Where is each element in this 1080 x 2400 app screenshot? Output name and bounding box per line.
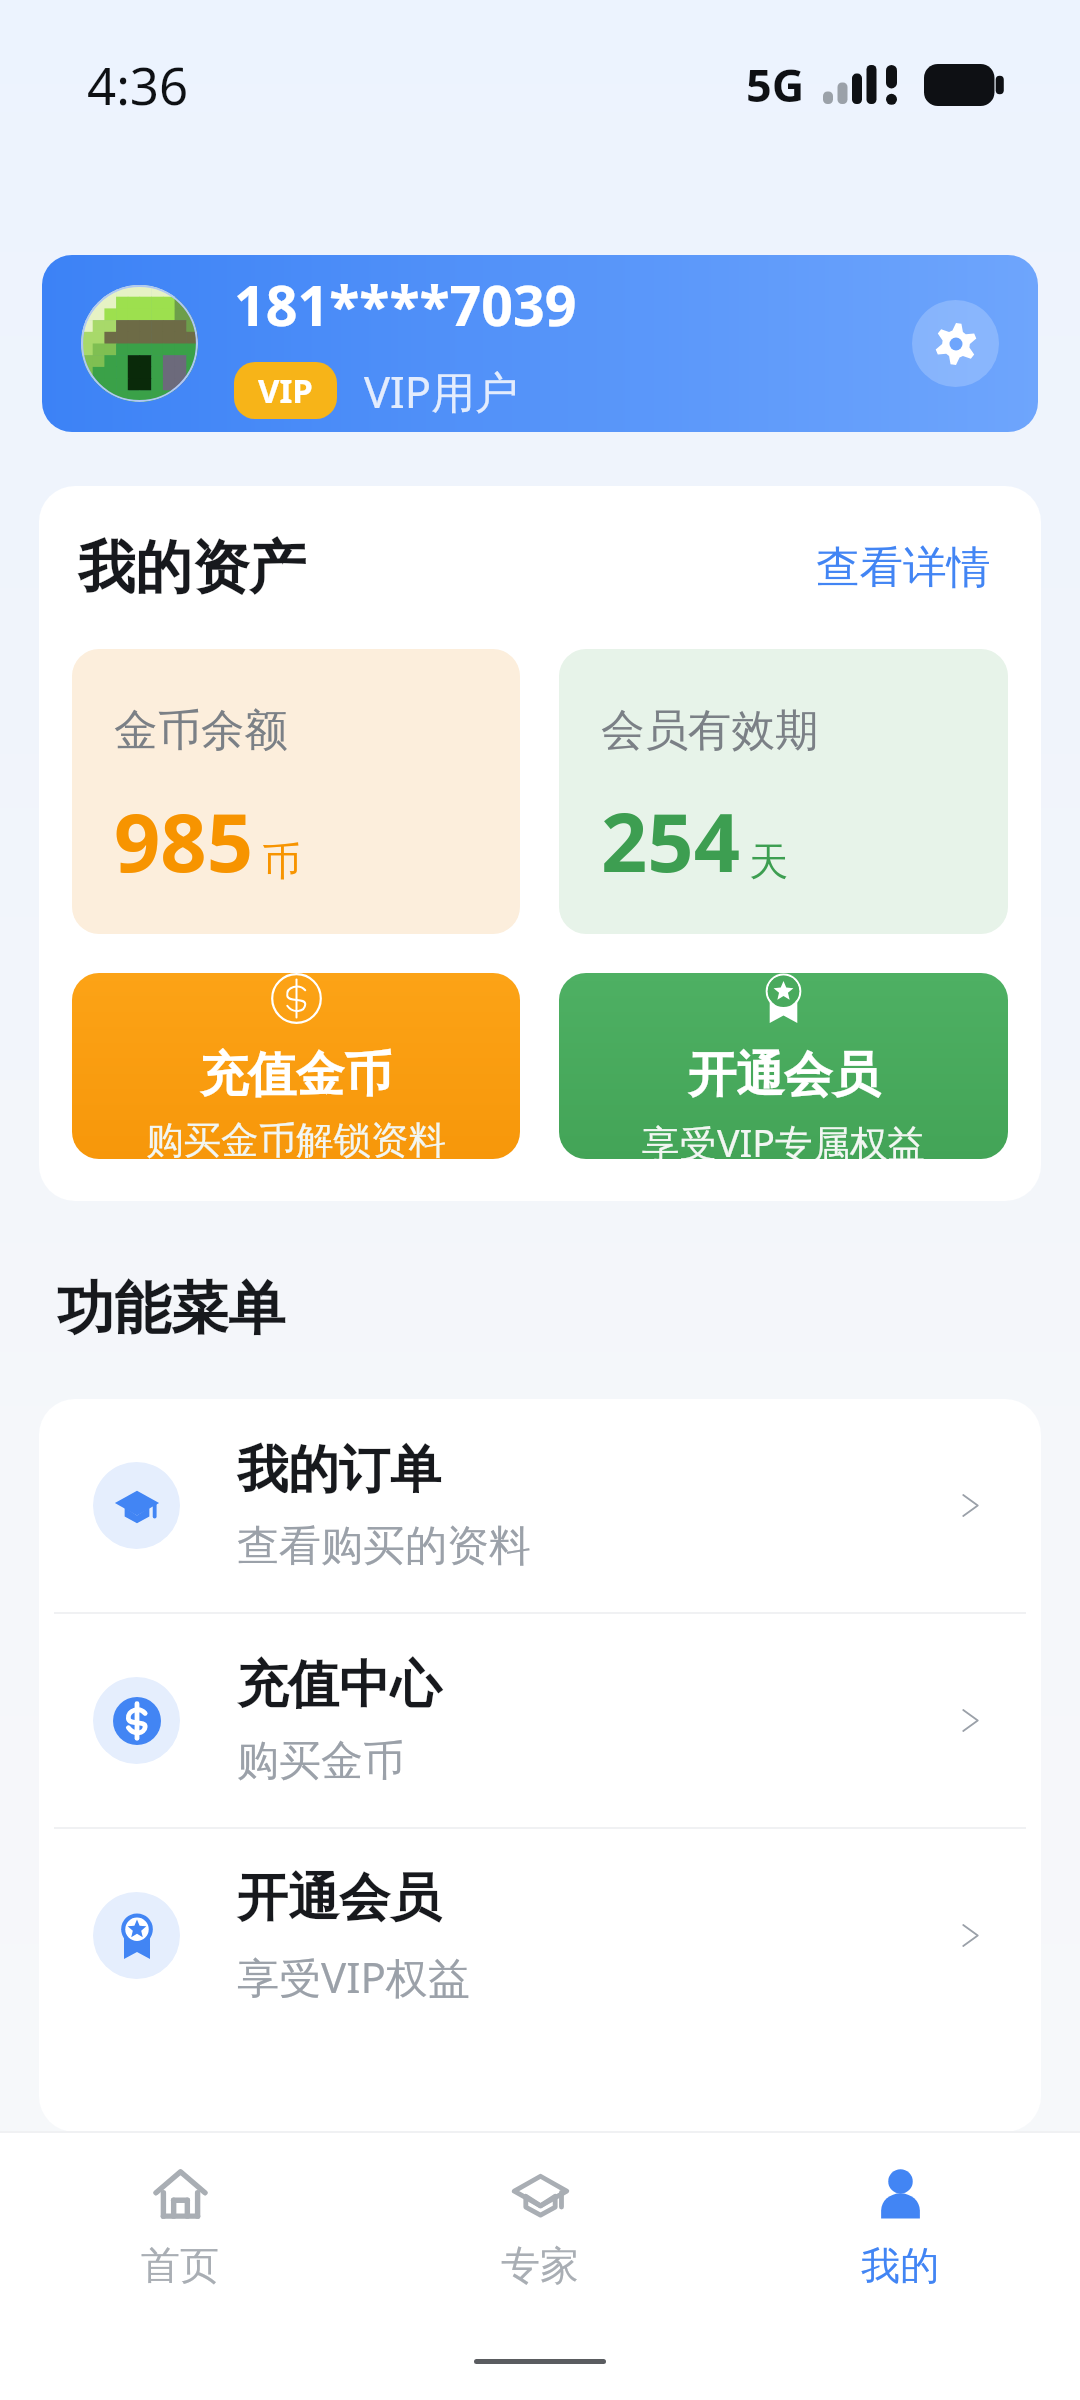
- staticText: 购买金币解锁资料: [146, 1117, 446, 1159]
- button[interactable]: 开通会员: [39, 1829, 1041, 2042]
- staticText: 会员有效期: [601, 703, 819, 758]
- staticText: 金币余额: [114, 703, 288, 758]
- staticText: VIP: [258, 368, 313, 413]
- staticText: 4:36: [87, 50, 189, 119]
- button[interactable]: 首页: [0, 2133, 360, 2322]
- staticText: 充值中心: [237, 1653, 441, 1717]
- staticText: 开通会员: [237, 1866, 441, 1930]
- staticText: 5G: [746, 54, 805, 115]
- staticText: 985: [114, 785, 253, 895]
- button[interactable]: 充值金币: [72, 973, 520, 1159]
- button[interactable]: 开通会员: [559, 973, 1008, 1159]
- staticText: VIP用户: [364, 361, 519, 420]
- staticText: 专家: [501, 2241, 579, 2290]
- staticText: 254: [601, 785, 740, 895]
- staticText: 享受VIP专属权益: [642, 1117, 925, 1159]
- staticText: 功能菜单: [57, 1273, 285, 1345]
- staticText: 我的订单: [237, 1438, 441, 1502]
- staticText: 181****7039: [234, 267, 577, 343]
- staticText: 开通会员: [688, 1045, 880, 1105]
- staticText: 首页: [141, 2241, 219, 2290]
- button[interactable]: 181****7039: [42, 255, 1038, 432]
- staticText: 天: [749, 837, 788, 886]
- button[interactable]: 充值中心: [39, 1614, 1041, 1827]
- button[interactable]: 专家: [360, 2133, 720, 2322]
- staticText: 享受VIP权益: [237, 1948, 470, 2005]
- button[interactable]: 查看详情: [804, 528, 1002, 607]
- staticText: 我的: [861, 2241, 939, 2290]
- staticText: 币: [262, 837, 301, 886]
- button[interactable]: 我的: [720, 2133, 1080, 2322]
- staticText: 查看详情: [816, 540, 990, 595]
- staticText: 我的资产: [78, 532, 306, 604]
- button[interactable]: 金币余额: [72, 649, 520, 934]
- staticText: 查看购买的资料: [237, 1520, 531, 1573]
- button[interactable]: 会员有效期: [559, 649, 1008, 934]
- button[interactable]: 我的订单: [39, 1399, 1041, 1612]
- button[interactable]: 设置: [912, 300, 999, 387]
- staticText: 充值金币: [200, 1045, 392, 1105]
- staticText: 购买金币: [237, 1735, 405, 1788]
